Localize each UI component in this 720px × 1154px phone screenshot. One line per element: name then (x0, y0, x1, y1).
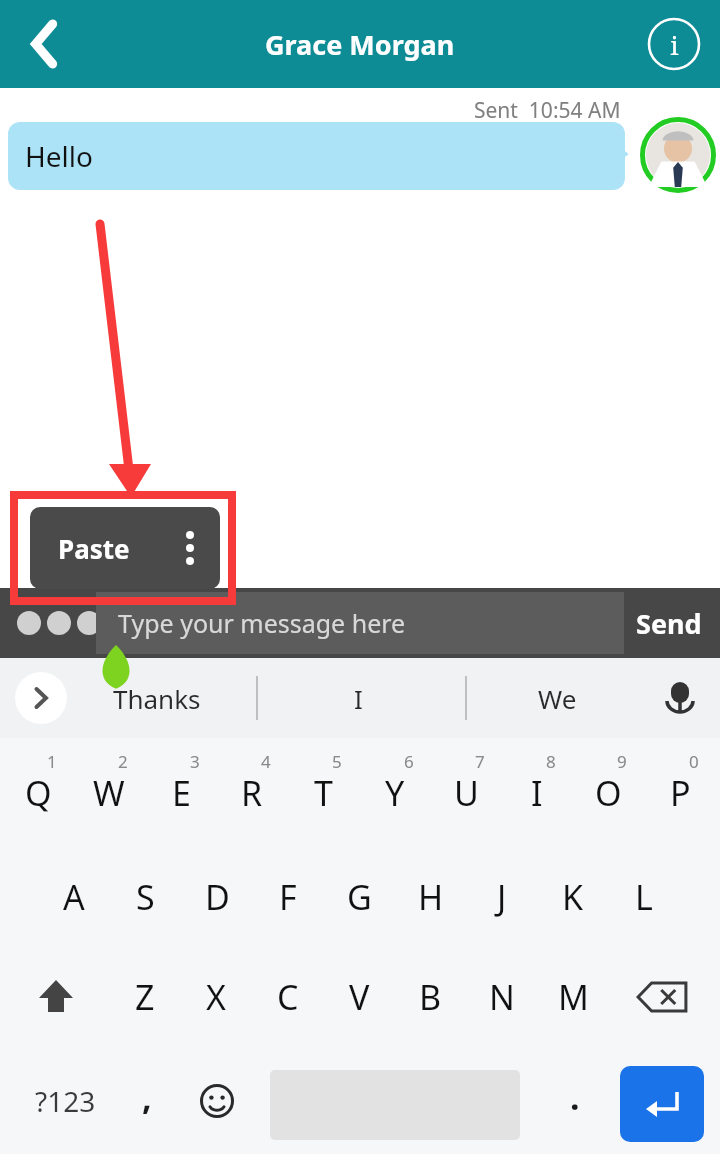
button[interactable]: K (538, 850, 608, 944)
staticText: I (354, 681, 363, 716)
button[interactable]: We (482, 658, 632, 738)
button[interactable]: A (39, 850, 109, 944)
button[interactable]: Expand suggestions (15, 672, 67, 724)
button[interactable]: Backspace (622, 950, 702, 1044)
staticText: 7 (475, 750, 485, 773)
button[interactable]: R (217, 746, 287, 840)
button[interactable]: , (112, 1054, 182, 1148)
button[interactable]: W (74, 746, 144, 840)
button[interactable]: Paste (30, 507, 220, 589)
staticText: Thanks (113, 681, 201, 716)
staticText: Send (636, 605, 702, 642)
staticText: Grace Morgan (265, 26, 455, 63)
staticText: Z (135, 974, 155, 1020)
staticText: C (277, 974, 299, 1020)
staticText: D (205, 874, 230, 920)
staticText: A (63, 874, 85, 920)
staticText: E (172, 770, 191, 816)
staticText: 3 (190, 750, 200, 773)
button[interactable]: Back (14, 15, 72, 73)
staticText: W (93, 770, 125, 816)
staticText: ?123 (35, 1082, 96, 1120)
button[interactable]: . (540, 1054, 610, 1148)
button[interactable]: L (609, 850, 679, 944)
button[interactable]: S (110, 850, 180, 944)
button[interactable]: N (467, 950, 537, 1044)
staticText: We (538, 681, 577, 716)
button[interactable]: Type your message here (96, 592, 624, 654)
button[interactable]: Emoji (182, 1054, 252, 1148)
staticText: S (136, 874, 155, 920)
staticText: 6 (404, 750, 414, 773)
button[interactable]: Z (110, 950, 180, 1044)
staticText: R (241, 770, 263, 816)
button[interactable]: Voice input (656, 674, 704, 722)
button[interactable]: D (182, 850, 252, 944)
button[interactable]: P (645, 746, 715, 840)
staticText: U (454, 770, 479, 816)
staticText: i (670, 27, 679, 62)
staticText: Sent 10:54 AM (474, 96, 621, 125)
staticText: Paste (58, 531, 130, 566)
staticText: V (349, 974, 370, 1020)
staticText: 1 (47, 750, 57, 773)
staticText: 9 (617, 750, 627, 773)
button[interactable]: G (324, 850, 394, 944)
button[interactable]: Hello (8, 122, 625, 190)
staticText: X (206, 974, 226, 1020)
staticText: M (558, 974, 589, 1020)
button[interactable]: B (395, 950, 465, 1044)
staticText: O (595, 770, 622, 816)
staticText: B (419, 974, 442, 1020)
staticText: L (635, 874, 653, 920)
staticText: G (347, 874, 372, 920)
button[interactable]: Y (360, 746, 430, 840)
staticText: 4 (261, 750, 271, 773)
staticText: I (531, 770, 543, 816)
staticText: N (489, 974, 515, 1020)
staticText: F (279, 874, 297, 920)
staticText: , (142, 1074, 152, 1120)
button[interactable]: Thanks (82, 658, 232, 738)
button[interactable]: C (253, 950, 323, 1044)
button[interactable]: Q (3, 746, 73, 840)
staticText: Type your message here (118, 606, 406, 640)
staticText: K (562, 874, 584, 920)
button[interactable]: M (538, 950, 608, 1044)
button[interactable]: F (253, 850, 323, 944)
staticText: Q (25, 770, 52, 816)
button[interactable]: Enter (620, 1066, 704, 1142)
staticText: P (670, 770, 691, 816)
button[interactable]: T (288, 746, 358, 840)
button[interactable]: I (283, 658, 433, 738)
button[interactable]: Send (628, 591, 710, 656)
staticText: H (418, 874, 444, 920)
button[interactable]: J (467, 850, 537, 944)
button[interactable]: Shift (18, 950, 94, 1044)
button[interactable]: I (502, 746, 572, 840)
staticText: T (314, 770, 333, 816)
staticText: J (497, 874, 507, 920)
staticText: Y (385, 770, 405, 816)
button[interactable]: ?123 (10, 1054, 120, 1148)
button[interactable]: U (431, 746, 501, 840)
staticText: 2 (118, 750, 128, 773)
staticText: Hello (25, 137, 93, 175)
staticText: 0 (689, 750, 699, 773)
staticText: 8 (546, 750, 556, 773)
staticText: 5 (332, 750, 342, 773)
button[interactable]: V (324, 950, 394, 1044)
button[interactable]: More options (14, 611, 104, 635)
button[interactable]: O (573, 746, 643, 840)
staticText: . (570, 1074, 580, 1120)
button[interactable]: X (181, 950, 251, 1044)
button[interactable]: Info (646, 16, 702, 72)
button[interactable]: H (396, 850, 466, 944)
button[interactable]: E (146, 746, 216, 840)
